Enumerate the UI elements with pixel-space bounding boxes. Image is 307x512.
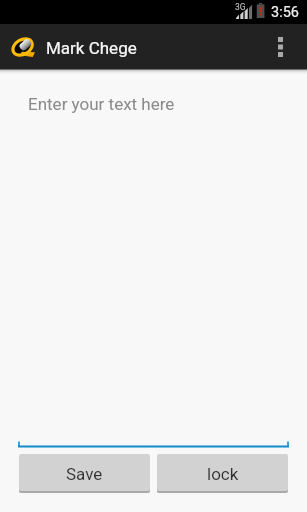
staticText: lock — [207, 464, 239, 484]
staticText: Save — [66, 464, 103, 484]
button[interactable]: More options — [262, 24, 298, 69]
button[interactable]: lock — [157, 454, 288, 491]
staticText: Enter your text here — [28, 94, 175, 114]
staticText: Mark Chege — [46, 38, 137, 58]
staticText: 3G — [235, 2, 246, 12]
staticText: 3:56 — [271, 4, 299, 21]
button[interactable]: Save — [19, 454, 150, 491]
